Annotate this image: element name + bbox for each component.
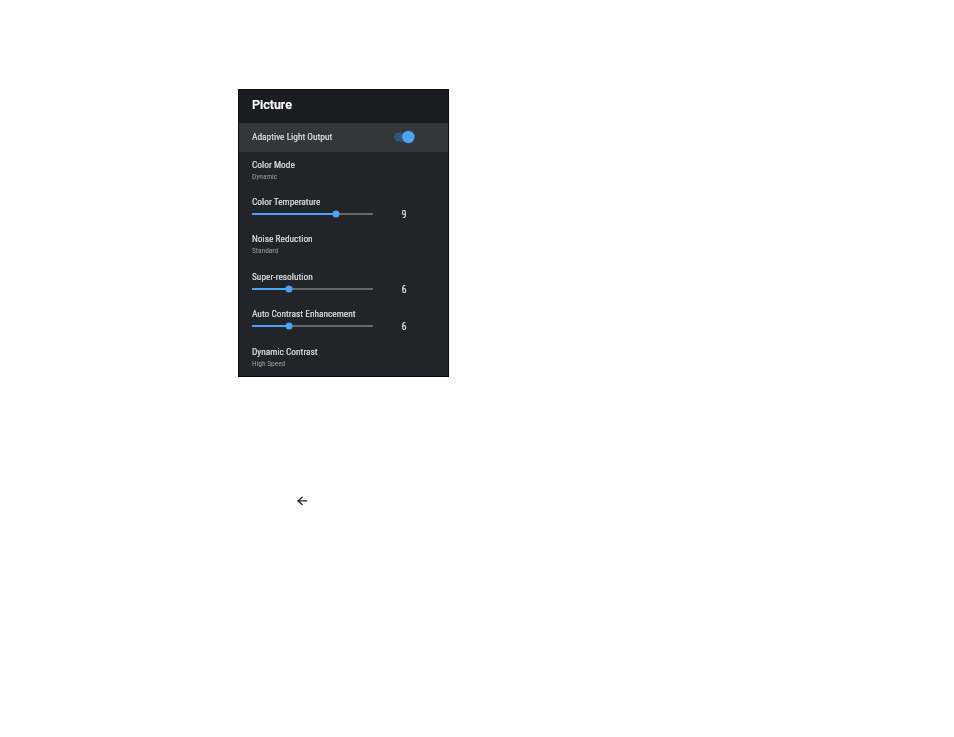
staticText: Standard [252,246,279,255]
staticText: 6 [401,283,407,295]
staticText: Dynamic Contrast [252,346,318,357]
staticText: Picture [252,97,292,112]
staticText: Auto Contrast Enhancement [252,308,356,319]
button[interactable]: Dynamic Contrast [239,346,448,372]
staticText: Adaptive Light Output [252,131,333,142]
staticText: High Speed [252,359,286,368]
button[interactable]: Color Mode [239,159,448,185]
button[interactable]: Auto Contrast Enhancement [239,308,448,338]
staticText: Color Mode [252,159,295,170]
staticText: Super-resolution [252,271,313,282]
button[interactable]: Color Temperature [239,196,448,226]
staticText: 9 [401,208,407,220]
staticText: 6 [401,320,407,332]
button[interactable]: Noise Reduction [239,233,448,259]
button[interactable]: Back [292,491,312,511]
button[interactable]: Adaptive Light Output [239,123,448,152]
button[interactable]: Super-resolution [239,271,448,301]
staticText: Noise Reduction [252,233,313,244]
staticText: Dynamic [252,172,278,181]
staticText: Color Temperature [252,196,321,207]
